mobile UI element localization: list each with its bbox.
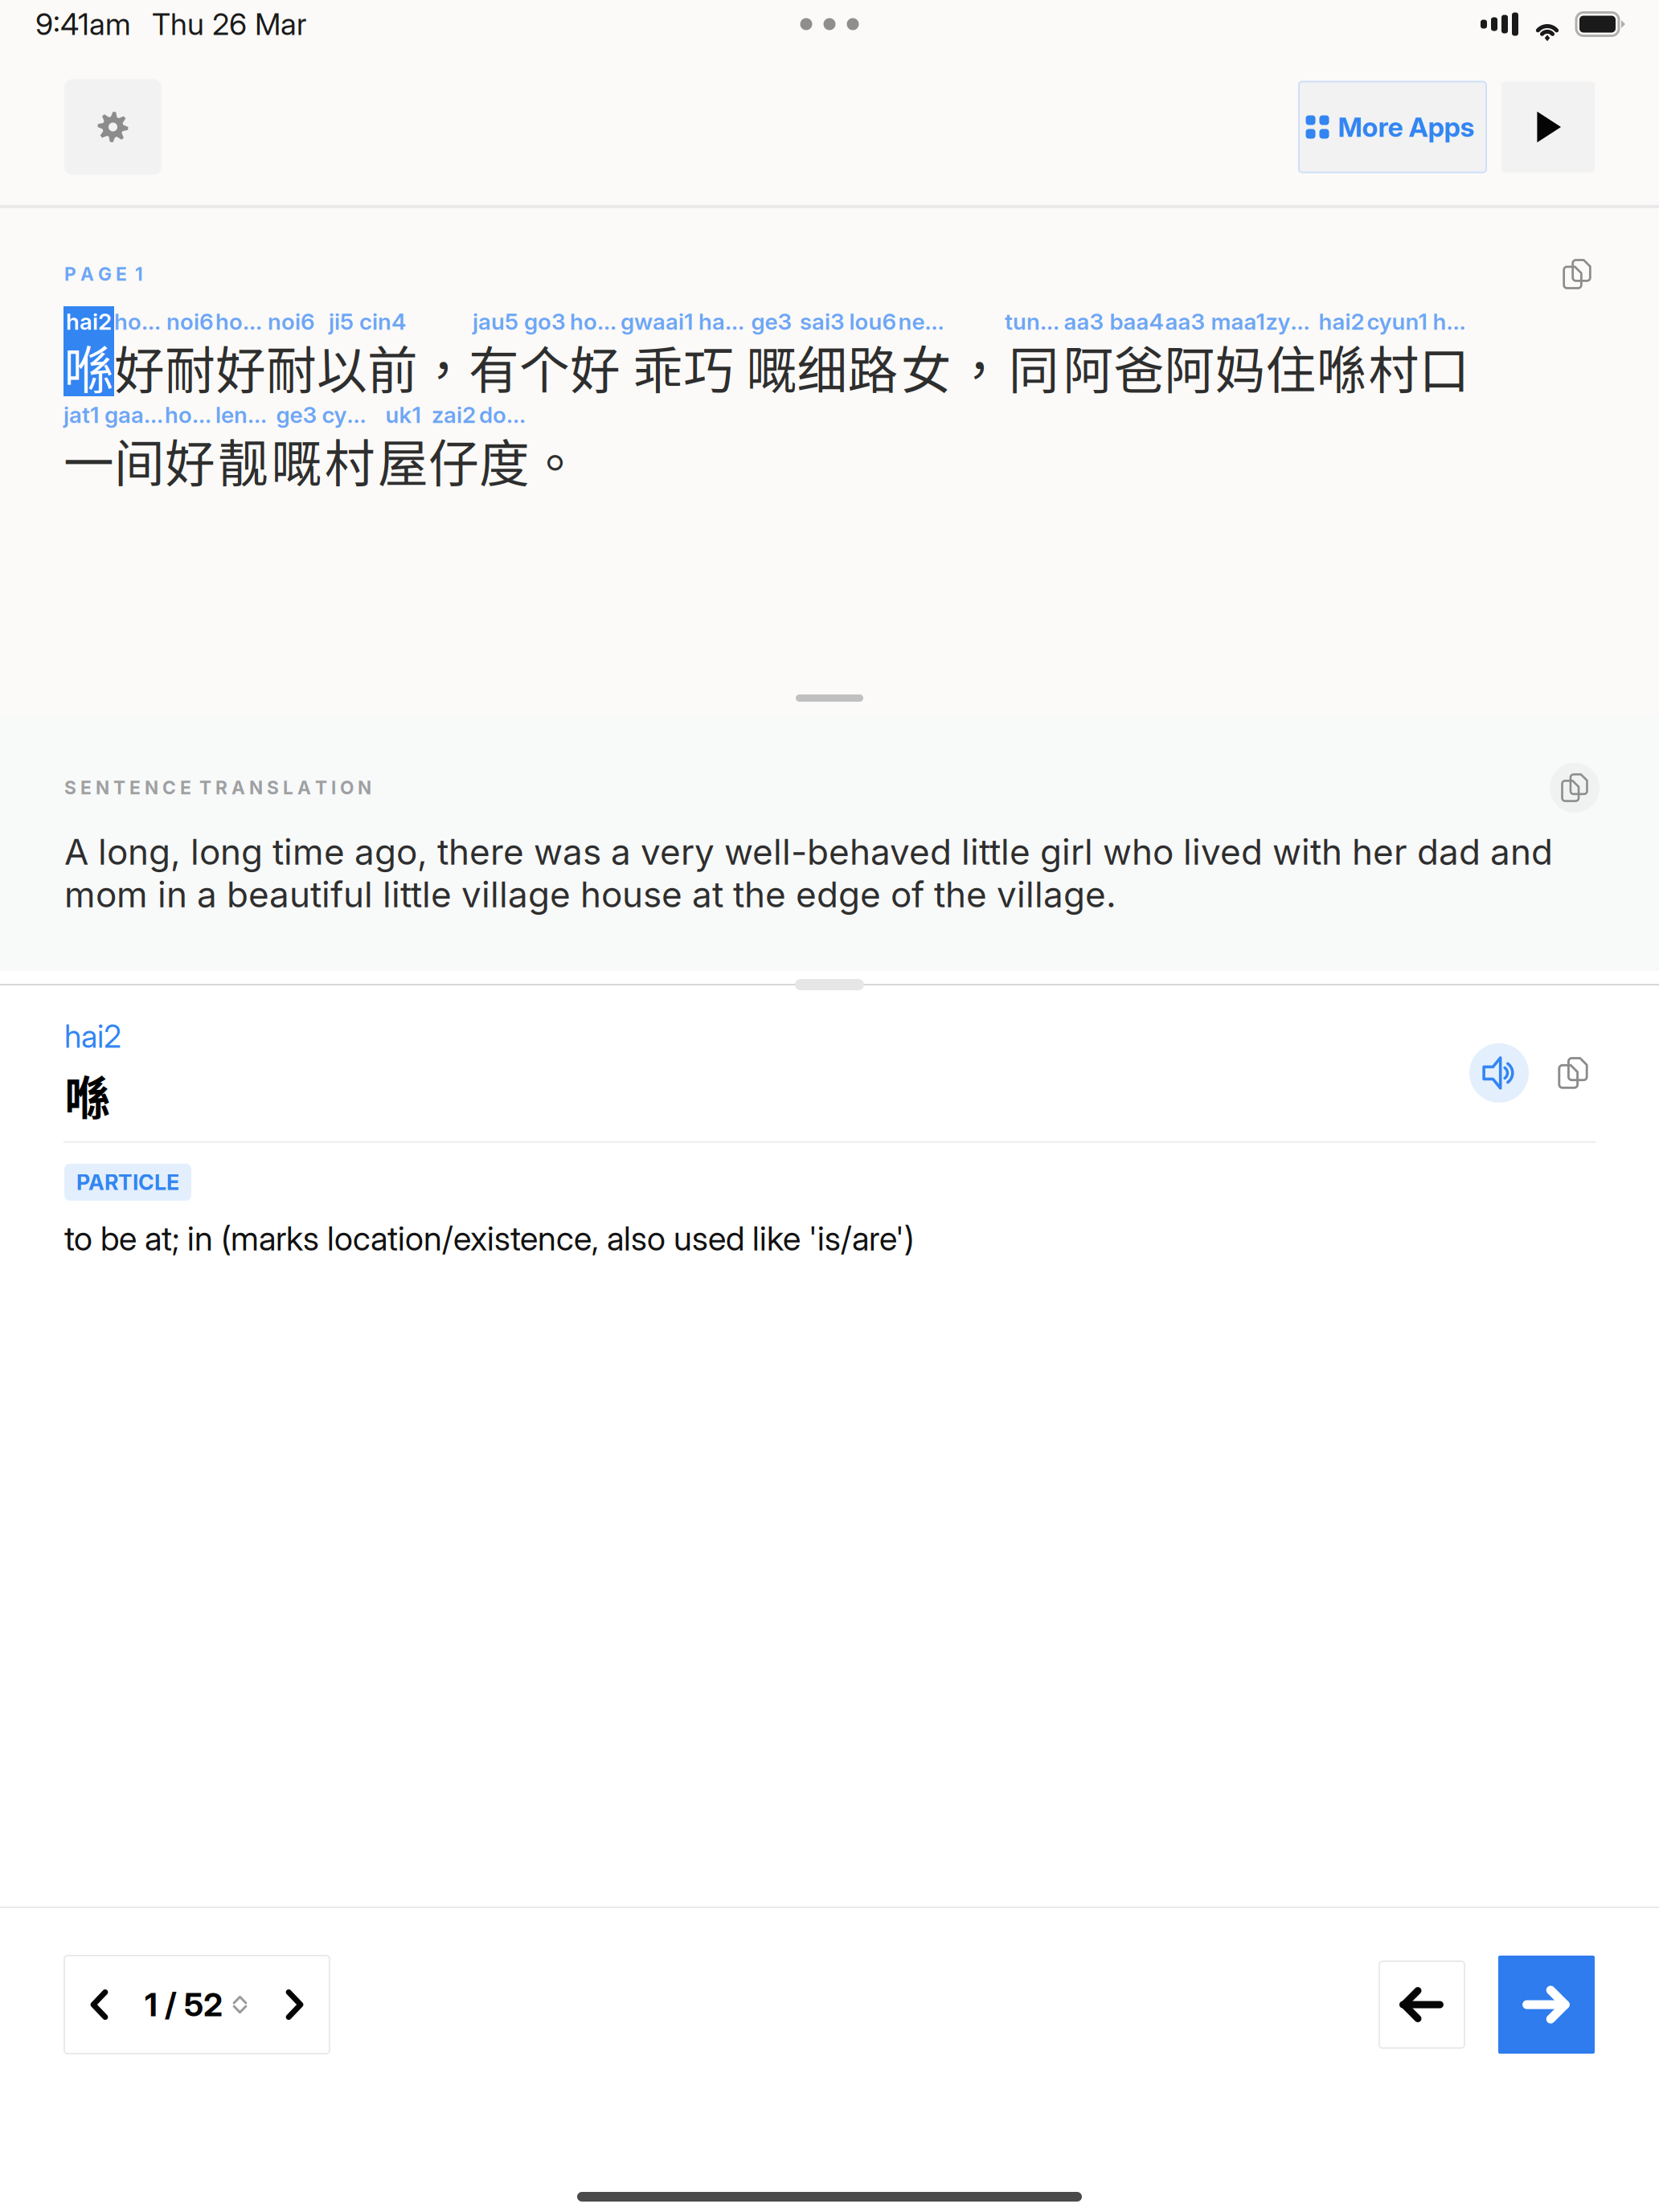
staticText: 9:41am (35, 6, 131, 42)
staticText: cyun1 hau2 (1367, 308, 1471, 335)
staticText: 好 (114, 330, 165, 403)
button[interactable]: Play (1501, 82, 1595, 172)
staticText: ji5 cin4 (329, 308, 406, 335)
staticText: 住 (1266, 330, 1316, 403)
staticText: 耐 (165, 330, 215, 403)
staticText: 喺 (1316, 330, 1367, 403)
staticText: lou6 (849, 308, 897, 335)
staticText: zyu6 (1266, 308, 1316, 335)
staticText: 。 (530, 423, 580, 496)
staticText: P A G E 1 (64, 263, 143, 285)
button[interactable]: Play pronunciation (1469, 1043, 1529, 1103)
staticText: 屋 (378, 423, 428, 496)
staticText: dou6 (479, 401, 530, 428)
staticText: zai2 (432, 401, 476, 428)
staticText: A long, long time ago, there was a very … (64, 830, 1553, 916)
staticText: 嘅 (746, 330, 797, 403)
staticText: PARTICLE (76, 1169, 179, 1195)
staticText: aa3 baa4 (1064, 308, 1163, 335)
staticText: 乖巧 (633, 330, 734, 403)
staticText: 喺 (63, 330, 114, 403)
staticText: 同 (1009, 330, 1059, 403)
staticText: 一间 (63, 423, 165, 496)
staticText: noi6 (268, 308, 315, 335)
staticText: to be at; in (marks location/existence, … (64, 1218, 914, 1259)
staticText: jau5 go3 (473, 308, 566, 335)
button[interactable]: Continue (1498, 1956, 1595, 2054)
staticText: 有个 (469, 330, 570, 403)
staticText: 阿妈 (1164, 330, 1266, 403)
staticText: 度 (479, 423, 530, 496)
staticText: cyun1 (322, 401, 378, 428)
staticText: ge3 (276, 401, 317, 428)
button[interactable]: Copy word (1550, 1043, 1596, 1103)
staticText: ge3 (751, 308, 792, 335)
staticText: hou2 (114, 308, 165, 335)
staticText: 好 (215, 330, 266, 403)
staticText: hou2 (570, 308, 621, 335)
staticText: More Apps (1338, 111, 1475, 143)
staticText: S E N T E N C E T R A N S L A T I O N (64, 777, 371, 799)
staticText: hai2 (66, 308, 112, 335)
staticText: 以前 (317, 330, 418, 403)
staticText: aa3 maa1 (1165, 308, 1265, 335)
staticText: 1 / 52 (145, 1985, 223, 2024)
staticText: 耐 (266, 330, 317, 403)
staticText: 细 (797, 330, 848, 403)
staticText: ， (418, 330, 469, 403)
button[interactable]: Back (1379, 1961, 1464, 2048)
staticText: hai2 (1319, 308, 1364, 335)
staticText: hou2 (165, 401, 215, 428)
button[interactable]: Previous page (74, 1957, 125, 2052)
staticText: 村口 (1368, 330, 1470, 403)
staticText: neoi5 (898, 308, 954, 335)
staticText: hou2 (215, 308, 266, 335)
staticText: hai2 (64, 1018, 121, 1055)
staticText: 阿爸 (1063, 330, 1164, 403)
staticText: 仔 (428, 423, 479, 496)
button[interactable]: Copy sentence (1556, 253, 1598, 295)
staticText: 靓 (218, 423, 269, 496)
staticText: leng3 (215, 401, 271, 428)
staticText: noi6 (166, 308, 214, 335)
staticText: 村 (325, 423, 375, 496)
staticText: uk1 (385, 401, 421, 428)
staticText: 女 (901, 330, 952, 403)
staticText: ， (954, 330, 1005, 403)
staticText: jat1 gaan1 (63, 401, 165, 428)
button[interactable]: More Apps (1299, 82, 1486, 172)
staticText: 路 (848, 330, 898, 403)
staticText: 喺 (64, 1062, 110, 1128)
staticText: gwaai1 haau2 (621, 308, 746, 335)
staticText: 嘅 (271, 423, 322, 496)
staticText: Thu 26 Mar (152, 6, 306, 42)
button[interactable]: Copy translation (1550, 763, 1600, 813)
button[interactable]: Settings (64, 79, 162, 175)
button[interactable]: Next page (268, 1957, 320, 2052)
staticText: tung4 (1005, 308, 1063, 335)
staticText: 好 (570, 330, 621, 403)
staticText: sai3 (800, 308, 845, 335)
staticText: 好 (165, 423, 215, 496)
